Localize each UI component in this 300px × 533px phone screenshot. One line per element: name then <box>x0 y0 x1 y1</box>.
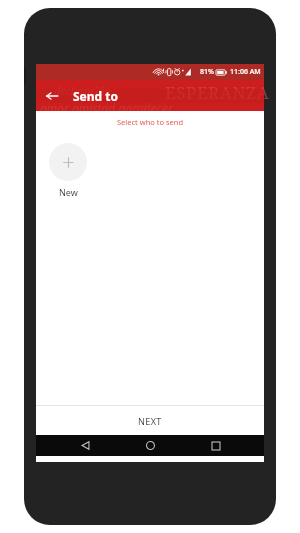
button[interactable]: Home <box>133 435 167 456</box>
staticText: 11:06 AM <box>230 67 261 77</box>
staticText: New <box>59 186 78 198</box>
staticText: Send to <box>73 88 118 104</box>
button[interactable]: Recent apps <box>199 435 233 456</box>
staticText: 81% <box>200 67 214 77</box>
staticText: Select who to send <box>36 117 264 127</box>
other: New <box>49 143 87 181</box>
button[interactable]: New <box>49 143 87 198</box>
button[interactable]: Back <box>68 435 102 456</box>
staticText: amor amistad agradecer <box>40 100 173 116</box>
staticText: NEXT <box>138 415 162 427</box>
staticText: ESPERANZA <box>165 81 270 104</box>
button[interactable]: Back <box>36 80 67 111</box>
button[interactable]: NEXT <box>36 406 264 435</box>
staticText: declaración <box>54 83 111 98</box>
